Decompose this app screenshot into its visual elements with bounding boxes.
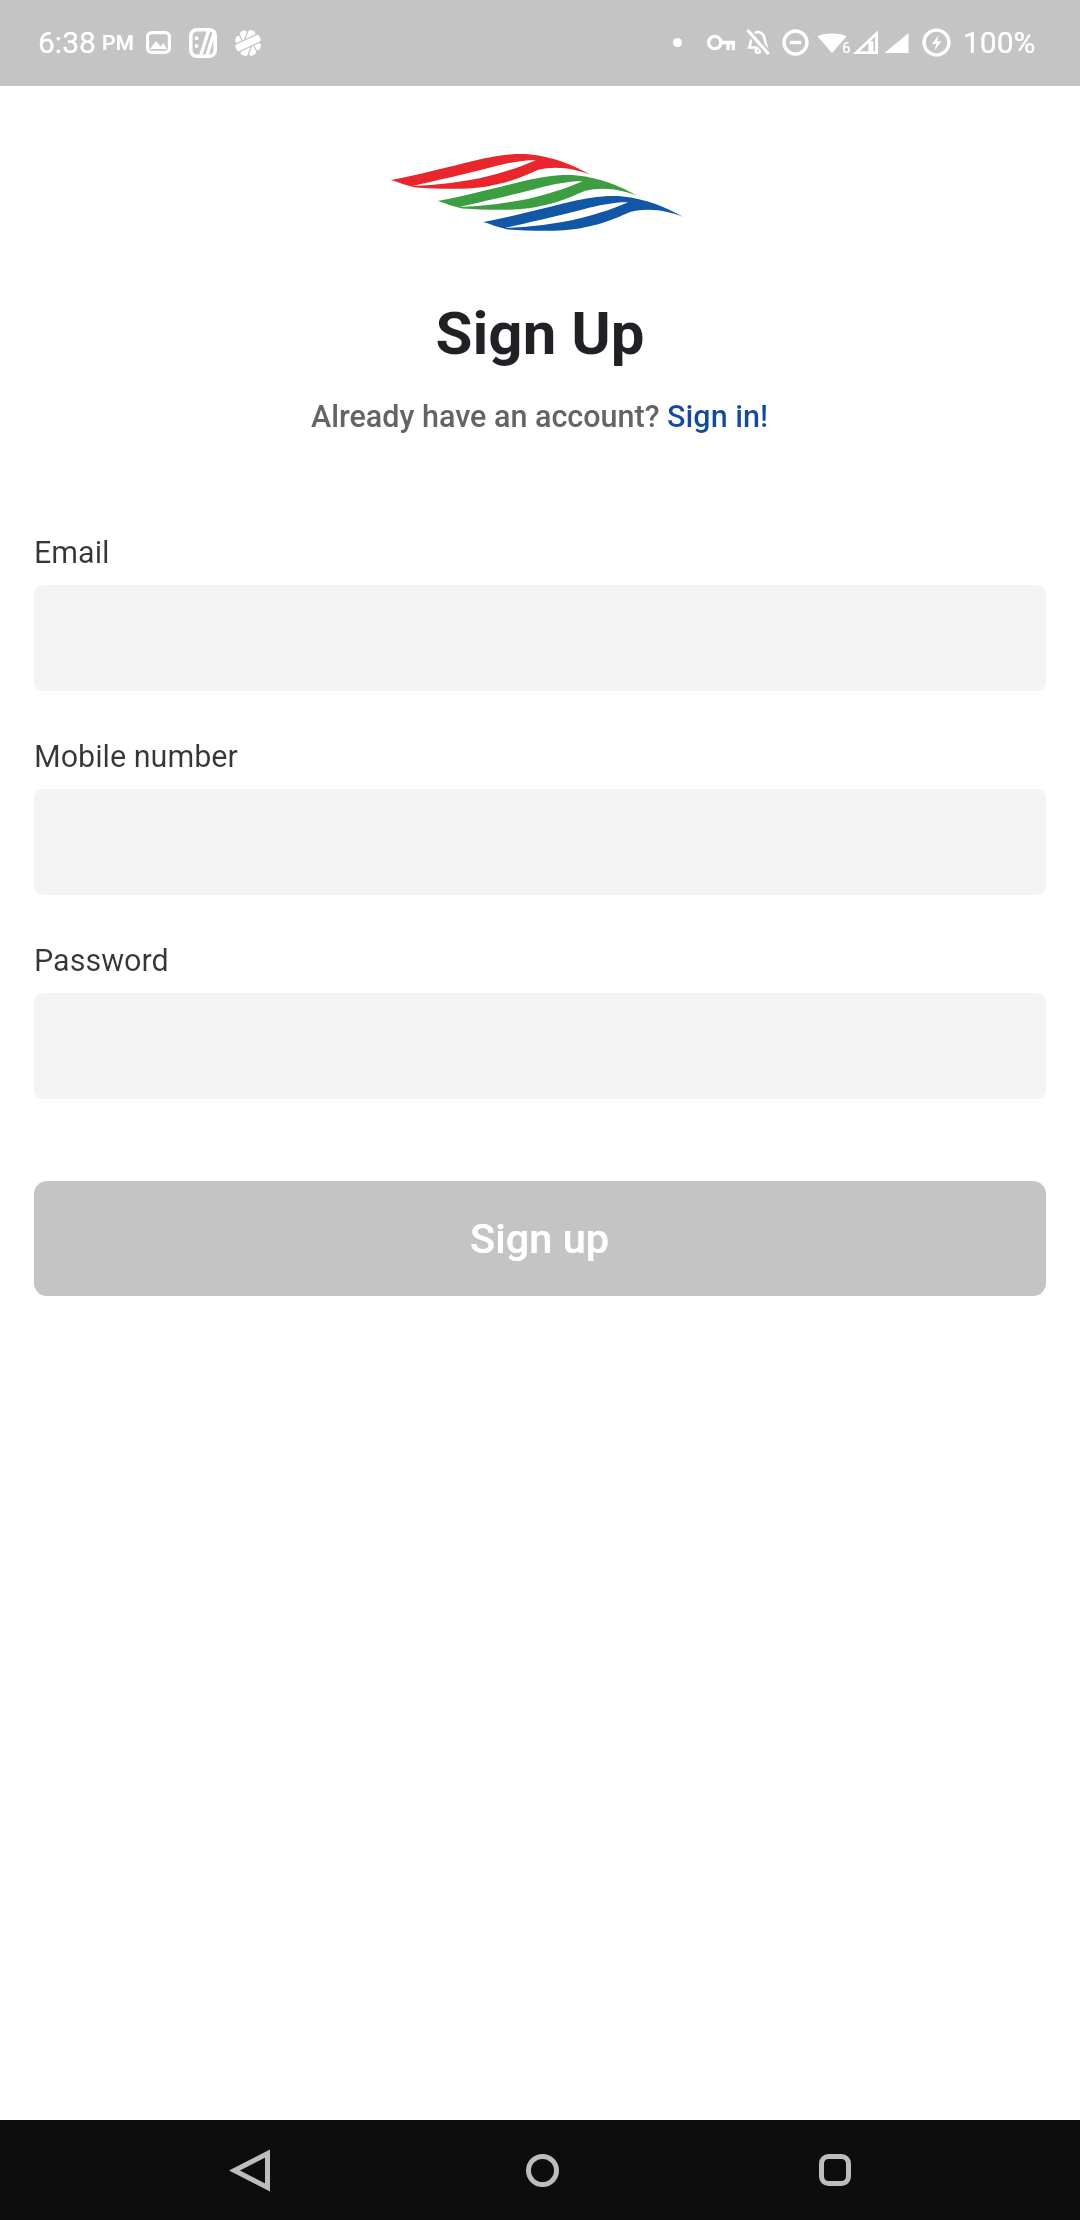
button[interactable]: Sign up [34, 1181, 1046, 1296]
staticText: Mobile number [34, 739, 238, 775]
staticText: 100% [963, 25, 1036, 60]
button[interactable]: Recents [783, 2120, 893, 2220]
staticText: Password [34, 943, 169, 979]
button[interactable]: Back [188, 2120, 298, 2220]
staticText: Sign up [470, 1214, 610, 1263]
staticText: PM [102, 31, 134, 56]
staticText: Sign Up [0, 298, 1080, 368]
staticText: 6 [842, 39, 851, 57]
staticText: Email [34, 535, 110, 571]
staticText: 6:38 [38, 25, 96, 60]
button[interactable]: Already have an account? Sign in! [311, 399, 769, 435]
button[interactable]: Home [485, 2120, 595, 2220]
